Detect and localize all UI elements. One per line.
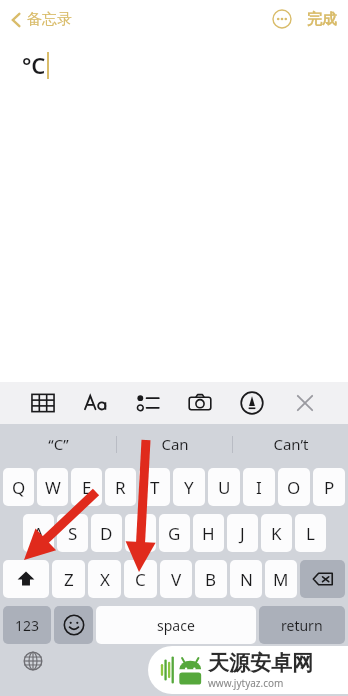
button[interactable]: 完成 [304,6,340,33]
staticText: G [168,522,181,545]
staticText: S [68,522,78,545]
staticText: D [100,522,113,545]
staticText: O [287,476,301,499]
button[interactable]: Close [286,384,324,422]
button[interactable]: F [125,514,156,552]
staticText: Z [64,568,74,591]
button[interactable]: H [193,514,224,552]
button[interactable]: C [124,560,157,598]
button[interactable]: More options [268,5,296,33]
staticText: Q [12,476,26,499]
button[interactable]: W [37,468,68,506]
staticText: “C” [48,434,69,454]
button[interactable]: S [57,514,88,552]
button[interactable]: Camera [181,384,219,422]
button[interactable]: Switch keyboard [22,650,44,672]
staticText: J [240,522,245,545]
staticText: E [82,476,92,499]
button[interactable]: R [105,468,136,506]
button[interactable]: T [139,468,170,506]
staticText: M [273,568,289,591]
staticText: www.jytyaz.com [208,676,284,690]
staticText: 备忘录 [27,10,72,29]
button[interactable]: I [243,468,275,506]
button[interactable]: P [313,468,345,506]
button[interactable]: Z [52,560,85,598]
button[interactable]: L [295,514,326,552]
staticText: U [218,476,231,499]
staticText: °C [22,50,46,80]
button[interactable]: space [96,606,256,644]
staticText: F [136,522,145,545]
staticText: return [281,616,323,635]
button[interactable]: Can’t [233,424,348,464]
staticText: 完成 [307,10,337,29]
staticText: Can’t [273,434,309,454]
button[interactable]: D [91,514,122,552]
staticText: C [135,568,146,591]
staticText: K [271,522,282,545]
button[interactable]: K [261,514,292,552]
button[interactable]: M [265,560,297,598]
staticText: P [324,476,335,499]
button[interactable]: N [230,560,262,598]
button[interactable]: Delete [300,560,345,598]
staticText: V [171,568,182,591]
button[interactable]: Table [24,384,62,422]
button[interactable]: X [88,560,121,598]
button[interactable]: Checklist [129,384,167,422]
staticText: I [256,476,262,499]
staticText: Can [161,434,189,454]
button[interactable]: Q [3,468,34,506]
staticText: Y [184,476,194,499]
staticText: R [115,476,126,499]
button[interactable]: Shift [3,560,49,598]
button[interactable]: Text format [77,384,115,422]
staticText: space [157,616,195,635]
button[interactable]: B [195,560,227,598]
staticText: L [306,522,315,545]
staticText: 123 [15,616,40,635]
button[interactable]: Back to Notes [6,6,76,33]
button[interactable]: O [278,468,310,506]
button[interactable]: J [227,514,258,552]
staticText: N [240,568,253,591]
button[interactable]: Emoji [54,606,93,644]
button[interactable]: A [23,514,54,552]
staticText: T [150,476,160,499]
button[interactable]: Can [117,424,232,464]
button[interactable]: 123 [3,606,51,644]
button[interactable]: “C” [0,424,116,464]
button[interactable]: Markup [233,384,271,422]
staticText: B [205,568,217,591]
staticText: 天源安卓网 [208,650,313,676]
button[interactable]: G [159,514,190,552]
button[interactable]: V [160,560,192,598]
button[interactable]: Y [173,468,205,506]
button[interactable]: U [208,468,240,506]
staticText: H [202,522,215,545]
button[interactable]: E [71,468,102,506]
staticText: A [33,522,44,545]
staticText: W [45,476,61,499]
staticText: X [100,568,110,591]
button[interactable]: return [259,606,345,644]
